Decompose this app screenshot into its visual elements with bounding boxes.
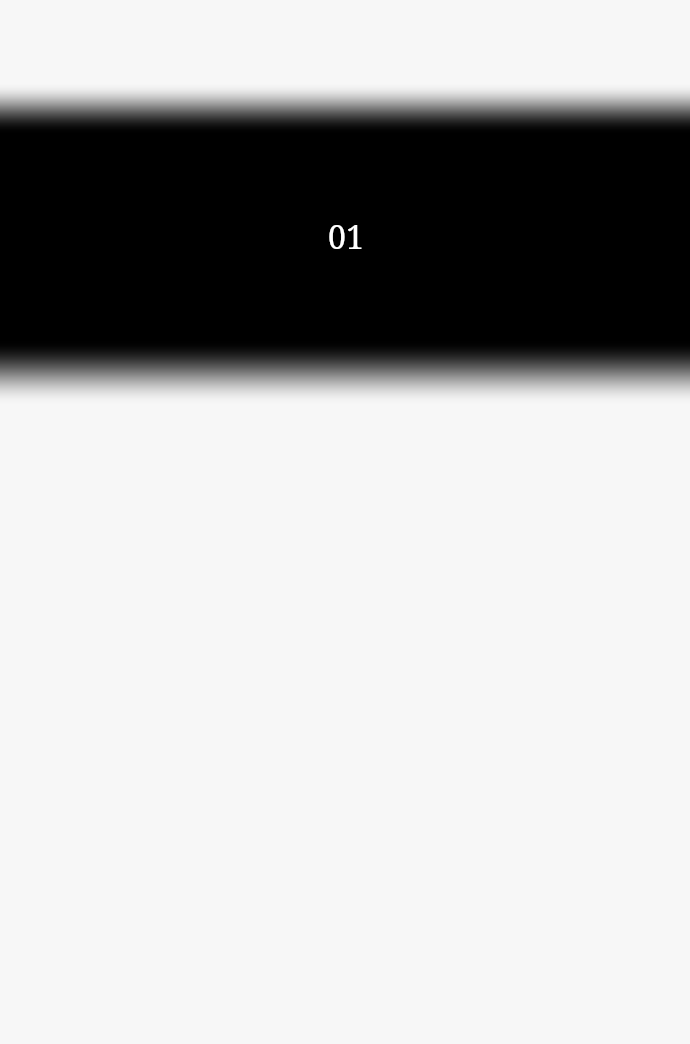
- button[interactable]: Open chapter 01: [0, 83, 690, 405]
- staticText: 01: [328, 215, 364, 259]
